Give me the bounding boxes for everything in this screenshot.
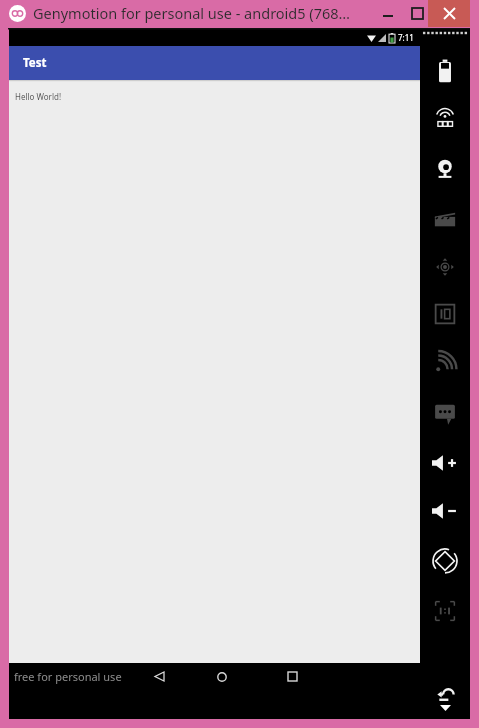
button[interactable]: Volume down [420,489,470,533]
button[interactable]: Close [428,0,470,27]
button[interactable]: Test [9,46,420,80]
button[interactable]: Back [140,663,178,690]
button[interactable]: Back [420,674,470,714]
button[interactable]: Video recording [420,196,470,240]
button[interactable]: Scale 1:1 [420,589,470,633]
button[interactable]: Rotate screen [420,539,470,583]
staticText: 7:11 [398,32,414,43]
button[interactable]: Phone and SMS [420,389,470,433]
staticText: Hello World! [15,91,62,102]
button[interactable]: More [420,697,470,719]
button[interactable]: Network [420,340,470,384]
button[interactable]: Home [203,663,241,690]
button[interactable]: GPS [420,97,470,141]
staticText: free for personal use [14,669,122,684]
staticText: Test [23,55,47,71]
button[interactable]: Camera [420,147,470,191]
button[interactable]: Minimize [374,0,402,27]
button[interactable]: Maximize [403,0,431,27]
other: Genymotion [9,5,26,22]
button[interactable]: Accelerometer [420,245,470,289]
staticText: Genymotion for personal use - android5 (… [33,3,351,23]
button[interactable]: Recent apps [273,663,311,690]
button[interactable]: Identifiers [420,292,470,336]
button[interactable]: Volume up [420,441,470,485]
button[interactable]: Battery [420,49,470,93]
